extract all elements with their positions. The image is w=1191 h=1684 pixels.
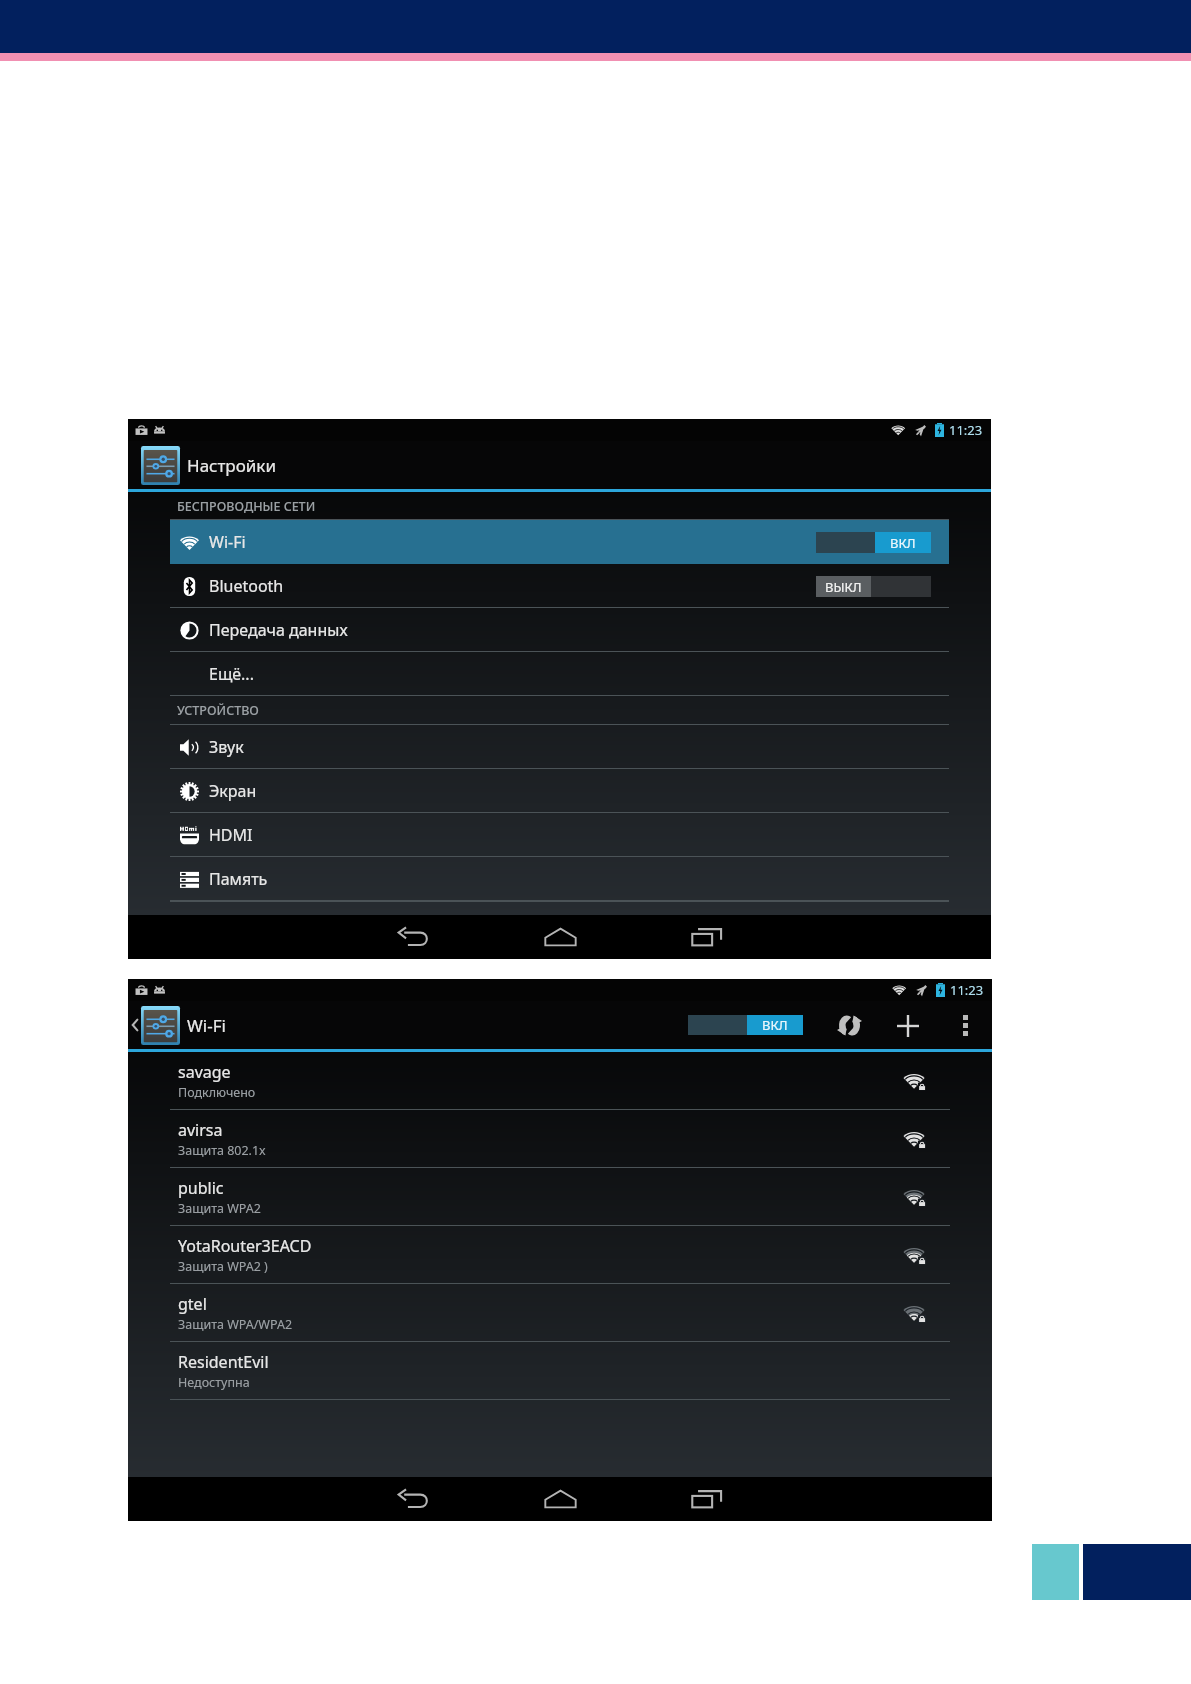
staticText: Защита WPA2 ) <box>178 1258 268 1275</box>
staticText: HDMI <box>209 824 253 846</box>
button[interactable]: Звук <box>128 725 991 769</box>
staticText: Подключено <box>178 1084 256 1101</box>
staticText: Защита 802.1x <box>178 1142 266 1159</box>
staticText: YotaRouter3EACD <box>178 1235 312 1257</box>
button[interactable]: Add network <box>887 1005 928 1046</box>
staticText: ВКЛ <box>762 1016 788 1034</box>
staticText: Передача данных <box>209 619 348 641</box>
staticText: БЕСПРОВОДНЫЕ СЕТИ <box>177 498 316 515</box>
button[interactable]: Recents <box>685 1477 729 1521</box>
button[interactable]: YotaRouter3EACD <box>128 1226 992 1284</box>
staticText: УСТРОЙСТВО <box>177 702 259 719</box>
button[interactable]: Back <box>391 915 435 959</box>
staticText: Защита WPA/WPA2 <box>178 1316 293 1333</box>
staticText: 11:23 <box>949 421 983 439</box>
staticText: 11:23 <box>950 981 984 999</box>
staticText: Звук <box>209 736 244 758</box>
button[interactable]: public <box>128 1168 992 1226</box>
staticText: Настройки <box>187 454 276 477</box>
button[interactable]: Recents <box>685 915 729 959</box>
staticText: public <box>178 1177 224 1199</box>
button[interactable]: More options <box>945 1005 986 1046</box>
button[interactable]: Bluetooth <box>128 564 991 608</box>
staticText: Защита WPA2 <box>178 1200 261 1217</box>
staticText: Память <box>209 868 268 890</box>
button[interactable]: savage <box>128 1052 992 1110</box>
button[interactable]: ВКЛ <box>688 1015 803 1035</box>
button[interactable]: Settings <box>141 1006 180 1045</box>
button[interactable]: HDMI <box>128 813 991 857</box>
button[interactable]: Память <box>128 857 991 901</box>
staticText: ResidentEvil <box>178 1351 269 1373</box>
button[interactable]: Экран <box>128 769 991 813</box>
staticText: Wi-Fi <box>209 531 246 553</box>
button[interactable]: Home <box>538 915 582 959</box>
staticText: Bluetooth <box>209 575 284 597</box>
button[interactable]: Wi-Fi <box>128 520 991 564</box>
button[interactable]: Ещё... <box>128 652 991 696</box>
staticText: savage <box>178 1061 231 1083</box>
button[interactable]: gtel <box>128 1284 992 1342</box>
button[interactable]: Home <box>538 1477 582 1521</box>
button[interactable]: ResidentEvil <box>128 1342 992 1400</box>
staticText: Wi-Fi <box>187 1014 226 1037</box>
button[interactable]: Back <box>391 1477 435 1521</box>
button[interactable]: ВЫКЛ <box>816 576 931 597</box>
staticText: ВКЛ <box>890 534 916 552</box>
button[interactable]: ВКЛ <box>816 532 931 553</box>
button[interactable]: Передача данных <box>128 608 991 652</box>
button[interactable]: avirsa <box>128 1110 992 1168</box>
staticText: ВЫКЛ <box>825 578 862 596</box>
button[interactable]: Up <box>129 1010 141 1040</box>
staticText: Недоступна <box>178 1374 250 1391</box>
staticText: gtel <box>178 1293 207 1315</box>
staticText: Ещё... <box>209 663 254 685</box>
staticText: Экран <box>209 780 257 802</box>
button[interactable]: Settings <box>141 446 180 485</box>
staticText: avirsa <box>178 1119 223 1141</box>
button[interactable]: WPS <box>829 1005 870 1046</box>
